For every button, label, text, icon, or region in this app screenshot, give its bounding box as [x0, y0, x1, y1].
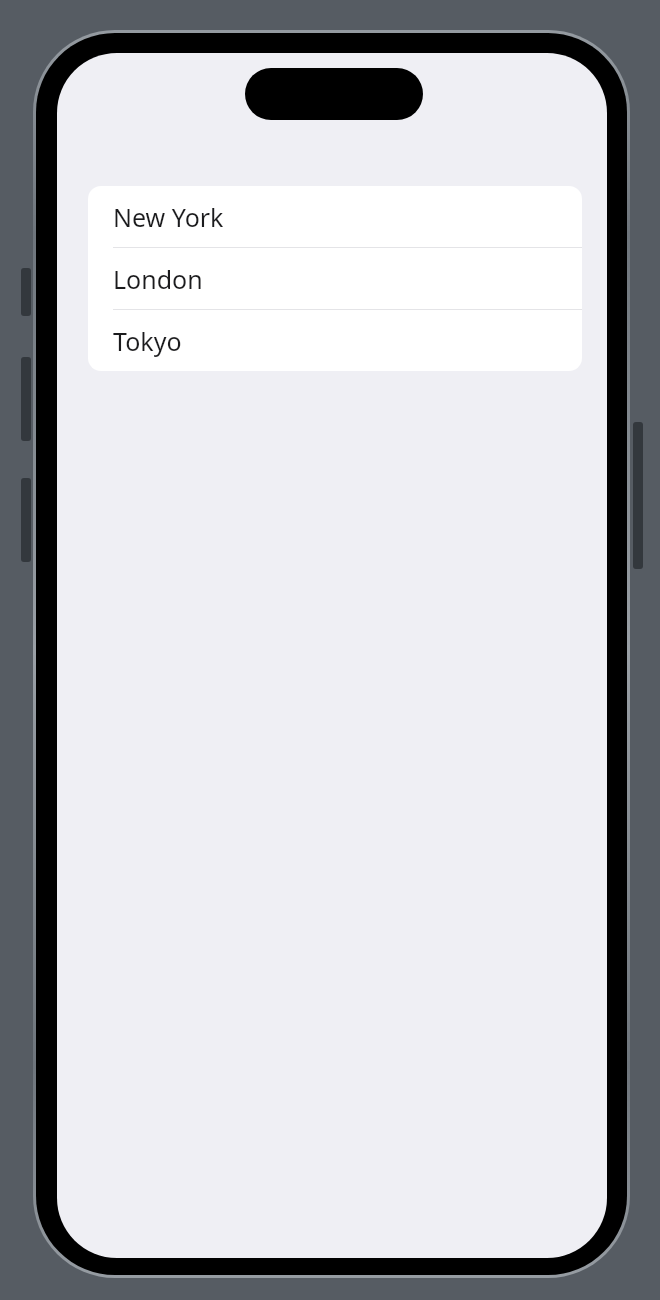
button[interactable]: London [88, 248, 582, 310]
button[interactable]: Tokyo [88, 310, 582, 371]
button[interactable]: New York [88, 186, 582, 248]
staticText: London [113, 262, 203, 296]
staticText: New York [113, 200, 224, 234]
staticText: Tokyo [113, 324, 182, 358]
